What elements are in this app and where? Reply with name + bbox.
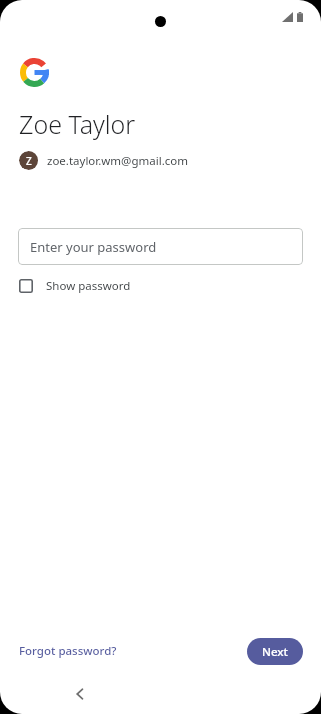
button[interactable]: Back — [62, 676, 98, 712]
staticText: Show password — [46, 278, 131, 294]
button[interactable]: Next — [247, 638, 303, 665]
staticText: Zoe Taylor — [19, 107, 136, 141]
staticText: Enter your password — [30, 238, 157, 256]
staticText: zoe.taylor.wm@gmail.com — [47, 153, 188, 169]
staticText: Next — [262, 644, 288, 660]
button[interactable]: Enter your password — [18, 228, 303, 265]
button[interactable]: Z — [19, 151, 194, 170]
button[interactable]: Forgot password? — [18, 639, 118, 663]
staticText: Forgot password? — [19, 643, 117, 659]
button[interactable]: Show password — [18, 275, 132, 297]
staticText: Z — [26, 154, 32, 168]
